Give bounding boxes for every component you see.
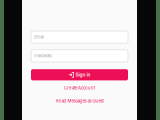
button[interactable]: Read Messages as Guest: [22, 99, 137, 103]
staticText: Create Account: [64, 85, 95, 91]
staticText: Email: [34, 35, 44, 39]
staticText: Read Messages as Guest: [55, 98, 103, 104]
staticText: Sign in: [75, 72, 90, 78]
staticText: Password: [34, 53, 51, 58]
button[interactable]: Create Account: [22, 86, 137, 90]
button[interactable]: Sign in: [22, 69, 137, 80]
